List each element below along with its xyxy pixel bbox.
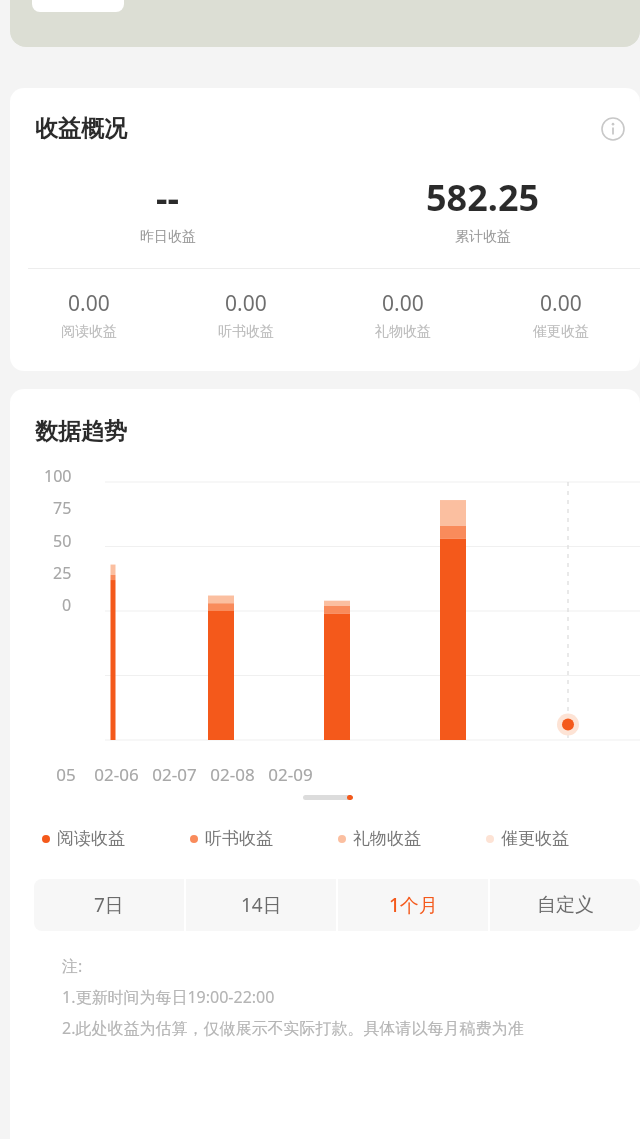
staticText: 100	[44, 465, 72, 487]
staticText: 02-06	[94, 763, 139, 786]
staticText: 自定义	[537, 893, 594, 917]
staticText: 7日	[94, 892, 124, 918]
staticText: 数据趋势	[35, 417, 127, 446]
staticText: 02-09	[268, 763, 313, 786]
staticText: 14日	[241, 892, 282, 918]
staticText: 听书收益	[205, 828, 273, 849]
staticText: 听书收益	[218, 323, 274, 341]
button[interactable]: 自定义	[490, 879, 640, 931]
staticText: 阅读收益	[61, 323, 117, 341]
staticText: 0.00	[225, 289, 267, 318]
staticText: 0.00	[382, 289, 424, 318]
staticText: 75	[53, 497, 72, 519]
staticText: 25	[53, 562, 72, 584]
staticText: 02-08	[210, 763, 255, 786]
staticText: 催更收益	[501, 828, 569, 849]
staticText: 0	[62, 594, 72, 616]
staticText: 0.00	[68, 289, 110, 318]
staticText: 1.更新时间为每日19:00-22:00	[62, 986, 275, 1008]
staticText: 02-07	[152, 763, 197, 786]
button[interactable]: 1个月	[338, 879, 488, 931]
staticText: 阅读收益	[57, 828, 125, 849]
staticText: 50	[53, 530, 72, 552]
button[interactable]: 说明	[600, 116, 626, 142]
staticText: 昨日收益	[140, 228, 196, 246]
staticText: --	[156, 173, 180, 222]
staticText: 收益概况	[35, 114, 127, 143]
staticText: 催更收益	[533, 323, 589, 341]
staticText: 05	[56, 763, 76, 786]
button[interactable]: 7日	[34, 879, 184, 931]
staticText: 1个月	[389, 892, 438, 918]
staticText: 2.此处收益为估算，仅做展示不实际打款。具体请以每月稿费为准	[62, 1017, 524, 1039]
staticText: 礼物收益	[353, 828, 421, 849]
button[interactable]	[10, 0, 640, 47]
staticText: 注:	[62, 955, 83, 977]
button[interactable]: 14日	[186, 879, 336, 931]
staticText: 礼物收益	[375, 323, 431, 341]
staticText: 582.25	[426, 173, 540, 222]
staticText: 累计收益	[455, 228, 511, 246]
staticText: 0.00	[540, 289, 582, 318]
